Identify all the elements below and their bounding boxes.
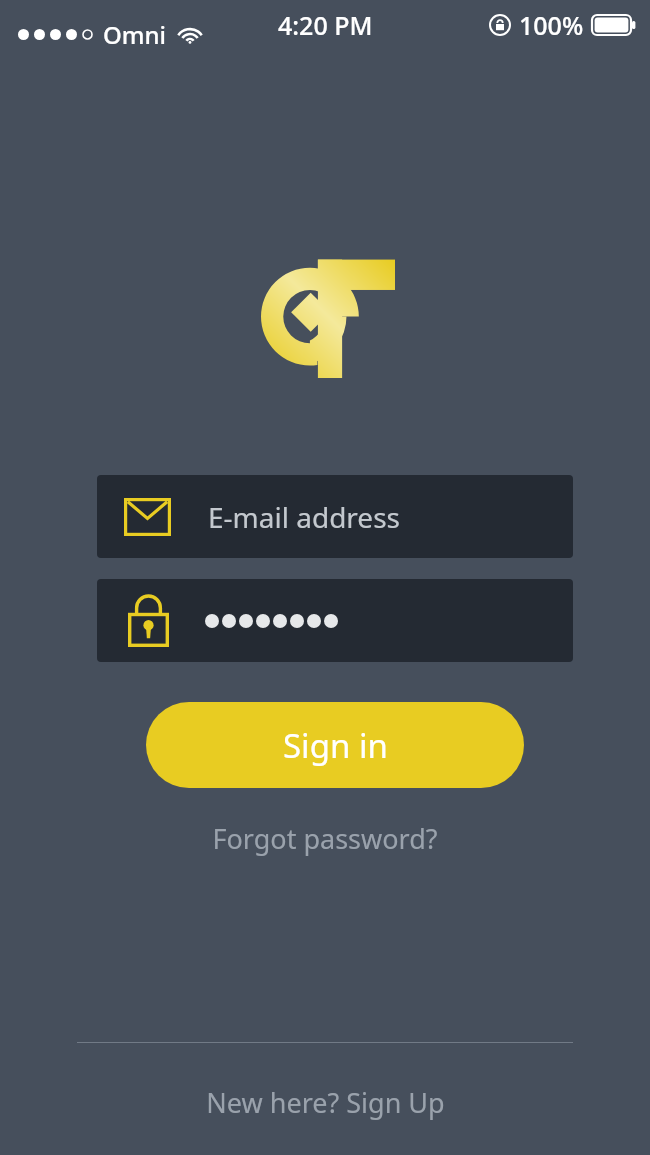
staticText: 100% [519,8,584,42]
button[interactable]: New here? Sign Up [0,1076,650,1128]
staticText: Sign in [283,723,388,768]
button[interactable] [97,579,573,662]
button[interactable]: Forgot password? [0,812,650,864]
button[interactable]: Sign in [146,702,524,788]
staticText: E-mail address [208,498,400,536]
staticText: New here? Sign Up [206,1084,445,1121]
button[interactable]: E-mail address [97,475,573,558]
staticText: 4:20 PM [278,8,373,42]
staticText: Forgot password? [212,820,438,857]
staticText: Omni [103,18,167,51]
